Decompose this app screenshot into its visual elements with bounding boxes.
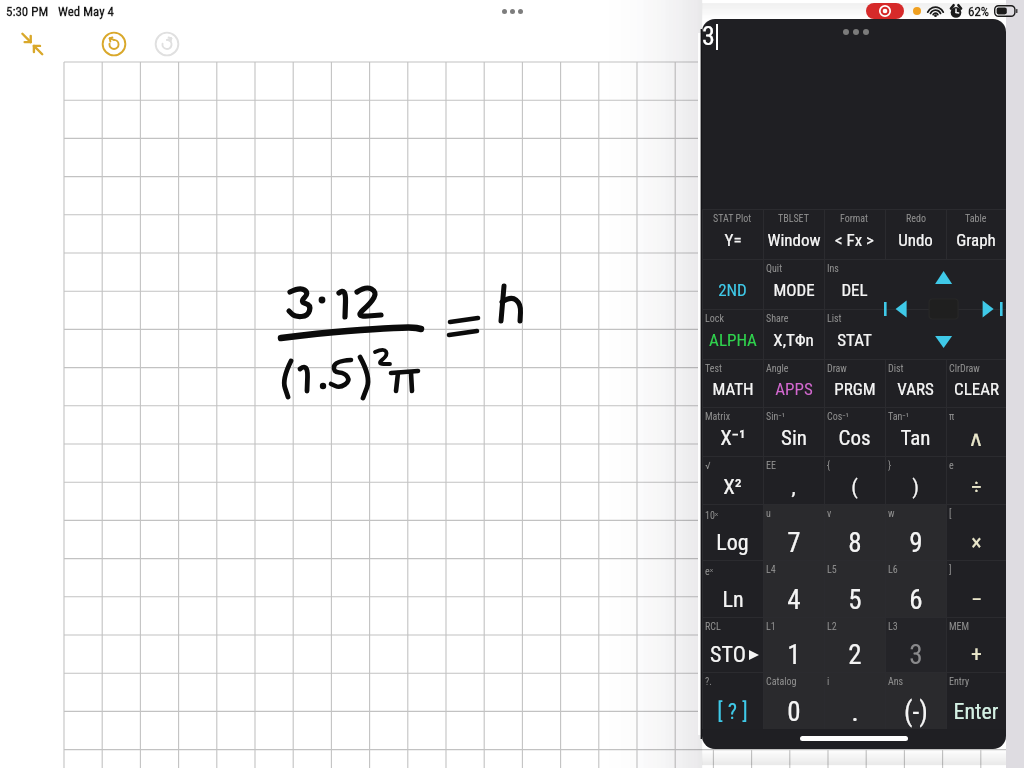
staticText: Redo [906, 213, 926, 225]
button[interactable]: Collapse [16, 28, 48, 60]
button[interactable]: Matrix [702, 407, 763, 456]
staticText: 2ND [718, 280, 747, 300]
button[interactable]: Undo [98, 28, 130, 60]
button[interactable]: v [824, 504, 885, 560]
button[interactable]: Tan⁻¹ [885, 407, 946, 456]
button[interactable]: Draw [824, 359, 885, 407]
staticText: Lock [705, 313, 724, 325]
button[interactable]: Table [946, 209, 1006, 259]
staticText: ( [851, 475, 858, 500]
staticText: [ ? ] [717, 699, 748, 725]
button[interactable]: Quit [763, 259, 824, 309]
button[interactable]: L2 [824, 617, 885, 672]
button[interactable]: Direction pad [884, 259, 1006, 359]
staticText: . [851, 696, 859, 728]
button[interactable]: { [824, 456, 885, 504]
staticText: } [888, 460, 892, 472]
staticText: Ln [722, 587, 744, 613]
staticText: Wed May 4 [58, 4, 114, 19]
button[interactable]: L4 [763, 560, 824, 617]
staticText: 0 [787, 696, 801, 728]
staticText: ) [912, 475, 919, 500]
staticText: Graph [956, 230, 996, 250]
button[interactable]: Dist [885, 359, 946, 407]
staticText: Quit [766, 263, 783, 275]
button[interactable]: Test [702, 359, 763, 407]
button[interactable]: 10ˣ [702, 504, 763, 560]
staticText: ÷ [971, 475, 982, 500]
button[interactable]: Cos⁻¹ [824, 407, 885, 456]
button[interactable]: MEM [946, 617, 1006, 672]
staticText: ∧ [968, 427, 984, 451]
staticText: 6 [909, 584, 923, 616]
staticText: Table [965, 213, 987, 225]
staticText: APPS [775, 379, 813, 399]
button[interactable]: Angle [763, 359, 824, 407]
button[interactable]: TBLSET [763, 209, 824, 259]
button[interactable] [885, 309, 1006, 359]
button[interactable]: EE [763, 456, 824, 504]
staticText: STAT Plot [713, 213, 752, 225]
staticText: Sin⁻¹ [766, 411, 785, 423]
staticText: [ [949, 508, 952, 520]
staticText: MEM [949, 621, 970, 633]
button[interactable]: } [885, 456, 946, 504]
staticText: Undo [898, 230, 933, 250]
staticText: Angle [766, 363, 789, 375]
button[interactable]: RCL [702, 617, 763, 672]
button[interactable]: i [824, 672, 885, 729]
staticText: L2 [827, 621, 837, 633]
button[interactable]: π [946, 407, 1006, 456]
staticText: ALPHA [709, 330, 757, 350]
staticText: VARS [897, 379, 934, 399]
button[interactable]: ClrDraw [946, 359, 1006, 407]
staticText: Enter [953, 699, 999, 725]
staticText: Entry [949, 676, 970, 688]
button[interactable]: L1 [763, 617, 824, 672]
staticText: PRGM [834, 379, 876, 399]
button[interactable]: u [763, 504, 824, 560]
button[interactable]: L5 [824, 560, 885, 617]
staticText: ] [949, 564, 952, 576]
button[interactable]: Ins [824, 259, 885, 309]
button[interactable]: Lock [702, 309, 763, 359]
button[interactable]: STAT Plot [702, 209, 763, 259]
staticText: ?. [705, 676, 712, 688]
button[interactable]: L3 [885, 617, 946, 672]
button[interactable]: L6 [885, 560, 946, 617]
button[interactable]: Entry [946, 672, 1006, 729]
staticText: L6 [888, 564, 898, 576]
button[interactable]: e [946, 456, 1006, 504]
button[interactable]: Catalog [763, 672, 824, 729]
staticText: X² [723, 475, 742, 500]
button[interactable]: [ [946, 504, 1006, 560]
button[interactable]: w [885, 504, 946, 560]
button[interactable]: Format [824, 209, 885, 259]
staticText: i [827, 676, 830, 688]
button[interactable]: Redo [885, 209, 946, 259]
button[interactable]: List [824, 309, 885, 359]
staticText: v [827, 508, 832, 520]
staticText: { [827, 460, 831, 472]
staticText: 4 [787, 584, 801, 616]
staticText: MODE [773, 280, 815, 300]
button[interactable]: More [843, 29, 869, 35]
staticText: Window [767, 230, 821, 250]
staticText: STO [710, 642, 746, 668]
button[interactable]: Screen recording [866, 3, 904, 19]
button[interactable]: eˣ [702, 560, 763, 617]
staticText: w [888, 508, 895, 520]
button[interactable]: 2ND [702, 259, 763, 309]
staticText: EE [766, 460, 776, 472]
button[interactable]: Sin⁻¹ [763, 407, 824, 456]
button[interactable]: Redo [151, 28, 183, 60]
button[interactable]: ] [946, 560, 1006, 617]
button[interactable]: Share [763, 309, 824, 359]
button[interactable]: √ [702, 456, 763, 504]
button[interactable] [885, 259, 1006, 309]
staticText: Share [766, 313, 789, 325]
button[interactable]: Ans [885, 672, 946, 729]
button[interactable]: ?. [702, 672, 763, 729]
staticText: Cos⁻¹ [827, 411, 849, 423]
staticText: DEL [841, 280, 868, 300]
